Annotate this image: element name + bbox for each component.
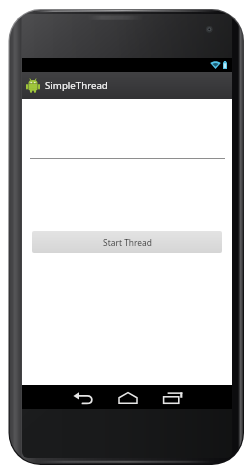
button[interactable]: Recent apps: [150, 385, 195, 409]
staticText: SimpleThread: [45, 79, 108, 92]
button[interactable]: Start Thread: [32, 231, 222, 253]
button[interactable]: Back: [60, 385, 105, 409]
staticText: Start Thread: [103, 237, 152, 248]
button[interactable]: Home: [105, 385, 150, 409]
button[interactable]: SimpleThread: [22, 72, 232, 99]
